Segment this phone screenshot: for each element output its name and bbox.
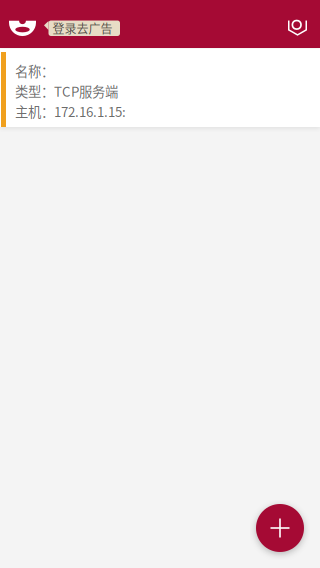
staticText: 名称： [15,61,54,80]
button[interactable]: 登录去广告 [44,20,120,36]
staticText: 主机：172.16.1.15: [15,102,126,121]
button[interactable]: 名称： [0,49,320,127]
button[interactable]: Home [9,20,36,37]
button[interactable]: Scan code [288,20,307,35]
staticText: 登录去广告 [52,20,112,37]
button[interactable]: Add connection [256,504,304,552]
staticText: 类型：TCP服务端 [15,81,118,101]
